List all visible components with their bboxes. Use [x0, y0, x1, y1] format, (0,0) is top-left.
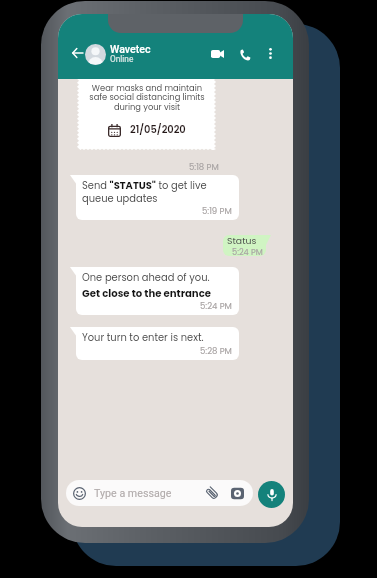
staticText: One person ahead of you.: [82, 271, 210, 285]
staticText: Wavetec: [110, 43, 151, 55]
staticText: Online: [110, 54, 134, 64]
button[interactable]: Status: [223, 235, 266, 256]
staticText: Get close to the entrance: [82, 286, 211, 300]
button[interactable]: More options: [259, 42, 282, 65]
button[interactable]: Back: [66, 42, 88, 64]
button[interactable]: Send "STATUS" to get live queue updates: [76, 175, 239, 220]
button[interactable]: One person ahead of you.: [76, 267, 239, 315]
button[interactable]: Type a message: [66, 480, 253, 506]
staticText: 5:24 PM: [232, 246, 263, 256]
staticText: Send "STATUS" to get live queue updates: [82, 179, 232, 205]
button[interactable]: Your turn to enter is next.: [76, 327, 239, 360]
staticText: Type a message: [94, 487, 172, 500]
staticText: Status: [227, 235, 257, 247]
staticText: Wear masks and maintain safe social dist…: [89, 82, 205, 113]
button[interactable]: Record voice message: [258, 481, 285, 508]
staticText: 5:18 PM: [189, 161, 219, 173]
button[interactable]: Voice call: [233, 43, 256, 66]
staticText: 5:28 PM: [200, 345, 232, 357]
button[interactable]: Video call: [206, 42, 229, 65]
staticText: Your turn to enter is next.: [82, 331, 204, 345]
staticText: 5:19 PM: [202, 205, 232, 217]
staticText: 5:24 PM: [200, 300, 232, 312]
button[interactable]: Wear masks and maintain safe social dist…: [77, 72, 216, 150]
staticText: 21/05/2020: [130, 123, 186, 137]
